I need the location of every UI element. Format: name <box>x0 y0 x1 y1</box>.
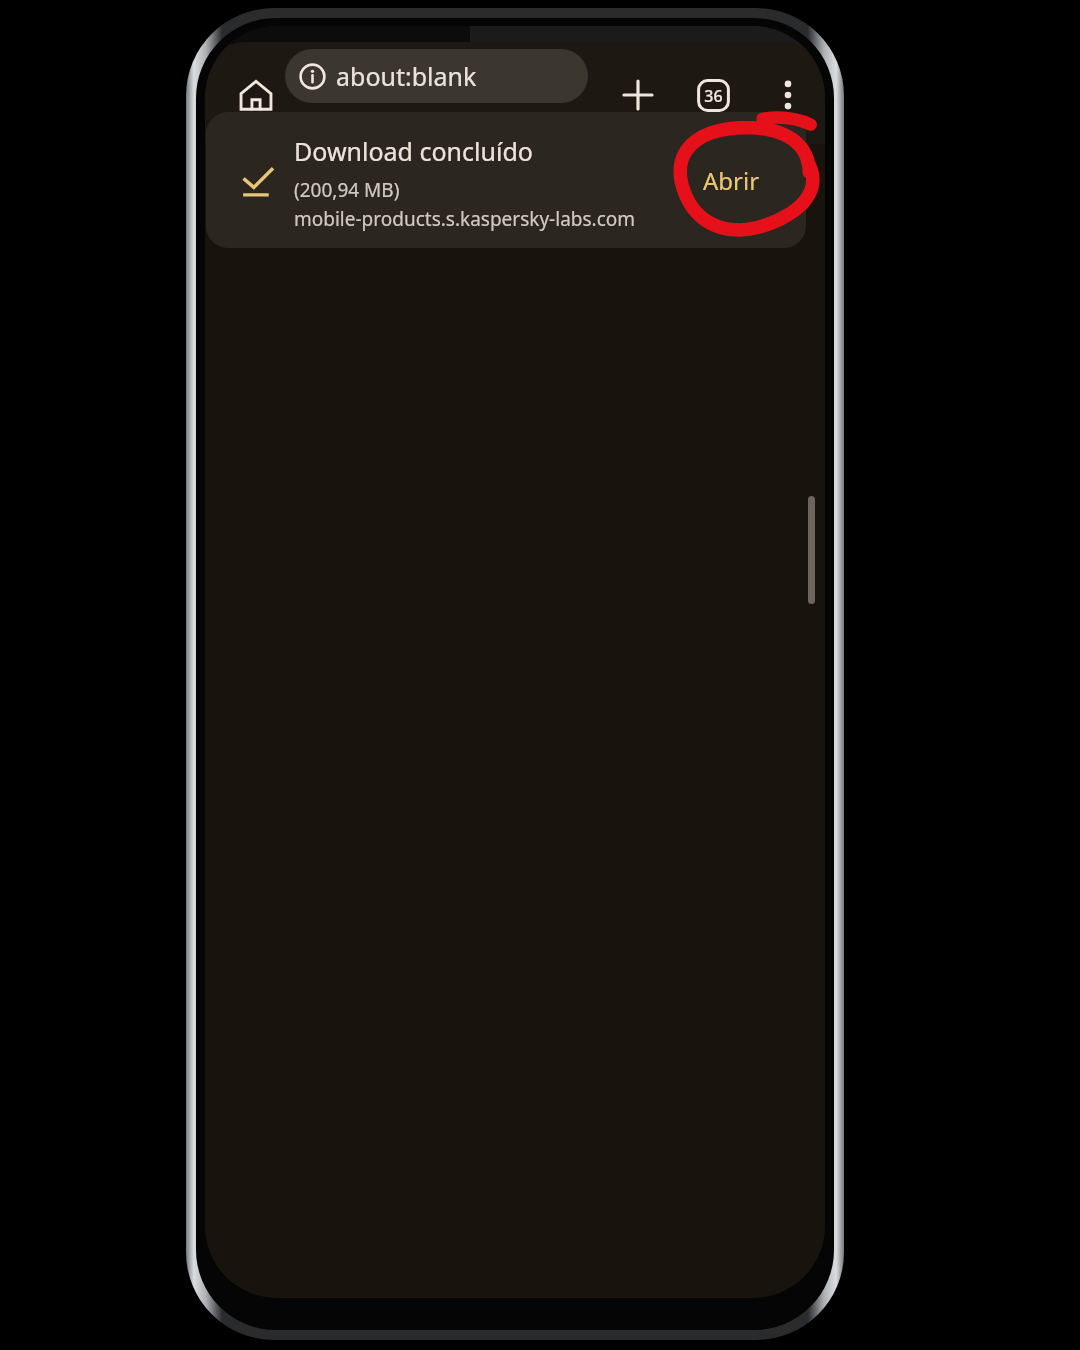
button[interactable]: about:blank <box>285 49 588 103</box>
button[interactable]: Abrir <box>676 150 786 210</box>
staticText: about:blank <box>336 59 477 93</box>
staticText: mobile-products.s.kaspersky-labs.com <box>294 206 636 232</box>
button[interactable]: Home <box>227 66 285 124</box>
staticText: Abrir <box>703 164 760 197</box>
button[interactable]: Switch tabs, 36 open <box>684 66 742 124</box>
button[interactable]: New tab <box>609 66 667 124</box>
staticText: Download concluído <box>294 134 533 168</box>
button[interactable]: More options <box>759 66 817 124</box>
staticText: (200,94 MB) <box>294 177 400 203</box>
staticText: 36 <box>704 85 723 107</box>
